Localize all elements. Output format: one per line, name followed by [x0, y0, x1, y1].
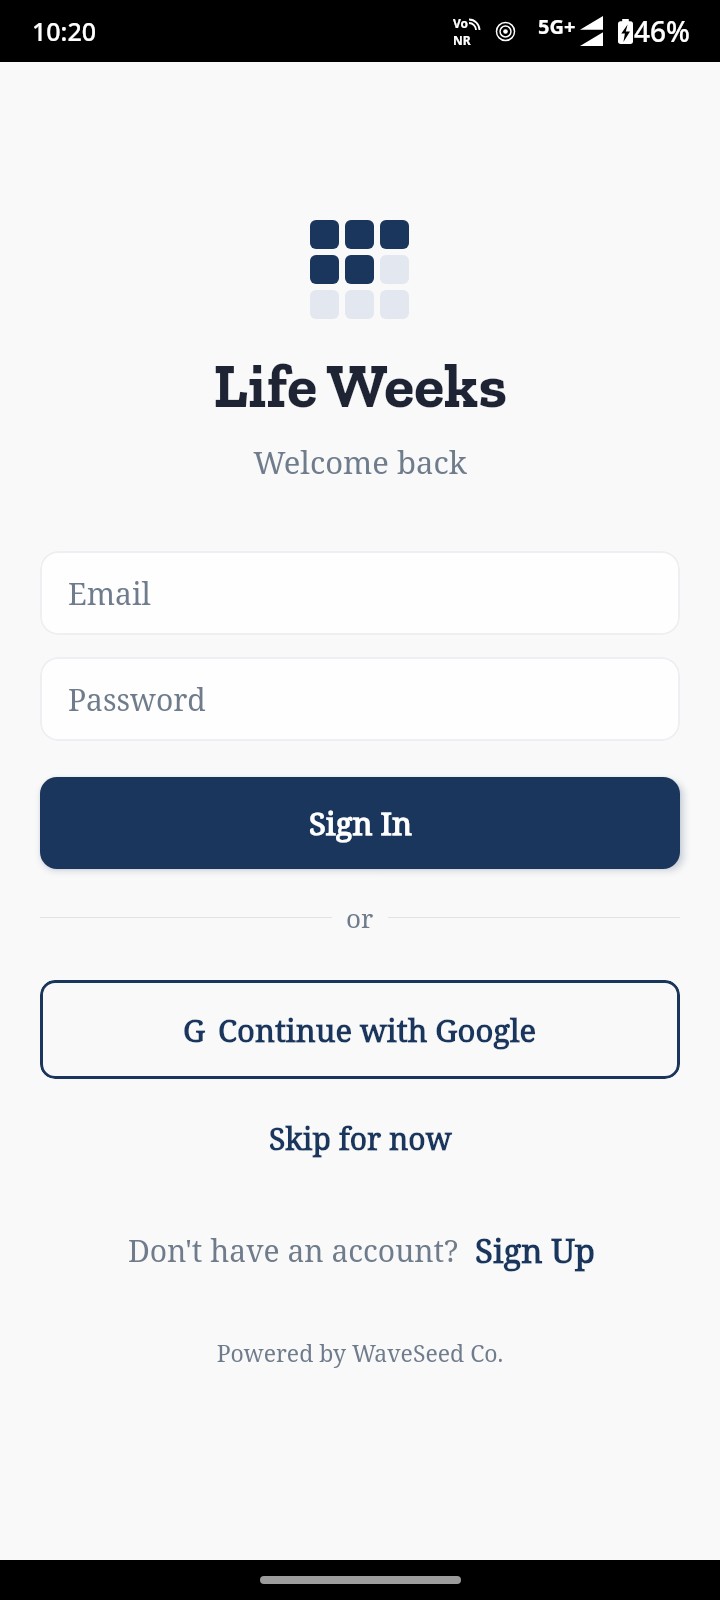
- staticText: 5G+: [538, 13, 576, 40]
- staticText: Welcome back: [0, 441, 720, 483]
- staticText: Continue with Google: [218, 1009, 537, 1051]
- other: Battery charging: [618, 19, 633, 44]
- staticText: 10:20: [32, 14, 97, 48]
- button[interactable]: Skip for now: [243, 1106, 478, 1171]
- staticText: NR: [453, 32, 471, 48]
- other: Hotspot: [495, 21, 516, 42]
- other: Home: [260, 1576, 461, 1584]
- staticText: Password: [68, 679, 206, 720]
- button[interactable]: Sign In: [40, 777, 680, 869]
- button[interactable]: G: [40, 980, 680, 1079]
- staticText: G: [183, 1009, 206, 1051]
- other: VoNR: [453, 15, 476, 48]
- staticText: Skip for now: [269, 1118, 452, 1159]
- staticText: 46%: [634, 12, 690, 50]
- button[interactable]: Email: [40, 551, 680, 635]
- button[interactable]: Password: [40, 657, 680, 741]
- staticText: Powered by WaveSeed Co.: [0, 1337, 720, 1368]
- staticText: Life Weeks: [0, 348, 720, 422]
- staticText: Don't have an account?: [128, 1230, 459, 1271]
- staticText: Sign In: [309, 802, 412, 844]
- button[interactable]: Sign Up: [475, 1228, 596, 1273]
- staticText: Sign Up: [475, 1228, 596, 1273]
- staticText: or: [346, 900, 374, 935]
- staticText: Email: [68, 573, 151, 614]
- staticText: Vo: [453, 15, 469, 31]
- other: Mobile signal: [580, 16, 603, 46]
